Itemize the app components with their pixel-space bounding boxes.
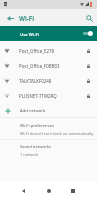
staticText: Wi-Fi preferences (20, 123, 55, 129)
button[interactable]: Navigate up (2, 10, 18, 26)
button[interactable]: Post_Office_F0BB03 (0, 58, 97, 73)
button[interactable]: Home (39, 182, 59, 200)
staticText: Wi-Fi (19, 14, 35, 22)
staticText: Post_Office_F0BB03 (19, 63, 60, 69)
staticText: PLUSNET-7TW2RQ (19, 93, 57, 99)
button[interactable]: Search (81, 10, 97, 26)
staticText: 1 network (20, 152, 39, 157)
staticText: Saved networks (20, 144, 52, 150)
button[interactable]: Post_Office_E278 (0, 43, 97, 58)
staticText: Post_Office_E278 (19, 48, 55, 54)
button[interactable]: PLUSNET-7TW2RQ (0, 88, 97, 103)
button[interactable]: Back (13, 182, 33, 200)
button[interactable]: Use Wi-Fi (0, 26, 97, 41)
staticText: TALKTALKF0248 (19, 78, 52, 84)
other: Wi-Fi switch (80, 28, 94, 39)
staticText: Use Wi-Fi (20, 31, 39, 37)
staticText: Wi-Fi doesn't turn back on automatically (20, 131, 94, 136)
button[interactable]: TALKTALKF0248 (0, 73, 97, 88)
button[interactable]: Saved networks (0, 143, 97, 158)
button[interactable]: Wi-Fi preferences (0, 122, 97, 137)
button[interactable]: Add network (0, 103, 97, 118)
staticText: Add network (20, 108, 46, 114)
button[interactable]: Recent apps (63, 182, 83, 200)
